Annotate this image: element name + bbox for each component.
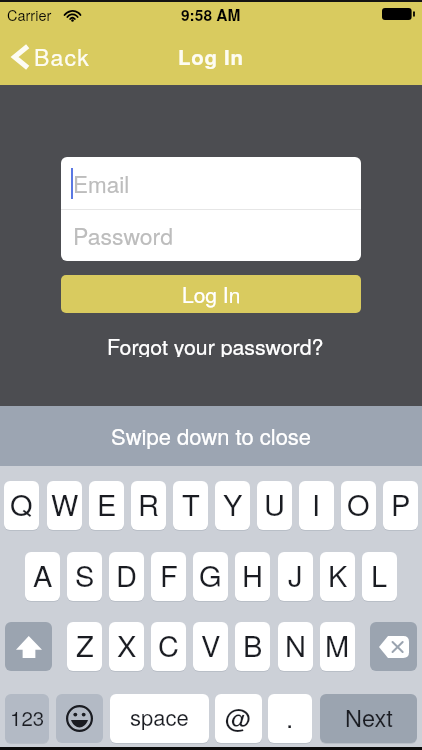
staticText: H	[242, 554, 263, 596]
staticText: Carrier	[7, 4, 52, 25]
button[interactable]: G	[193, 552, 228, 601]
button[interactable]: N	[278, 622, 313, 671]
staticText: Log In	[182, 279, 241, 309]
staticText: space	[130, 701, 189, 733]
button[interactable]: O	[341, 481, 376, 530]
button[interactable]: Swipe down to close	[0, 406, 422, 466]
staticText: P	[391, 483, 411, 525]
button[interactable]: R	[131, 481, 166, 530]
staticText: Z	[76, 624, 94, 666]
button[interactable]: Log In	[61, 275, 361, 313]
staticText: S	[75, 554, 95, 596]
staticText: @	[225, 698, 252, 735]
button[interactable]: V	[193, 622, 228, 671]
staticText: Swipe down to close	[111, 420, 312, 452]
staticText: I	[312, 483, 321, 525]
staticText: U	[264, 483, 285, 525]
staticText: 9:58 AM	[181, 4, 241, 26]
button[interactable]: B	[235, 622, 270, 671]
button[interactable]: U	[257, 481, 292, 530]
button[interactable]: C	[151, 622, 186, 671]
staticText: A	[33, 554, 53, 596]
staticText: M	[325, 624, 350, 666]
button[interactable]: Back	[0, 36, 103, 77]
staticText: G	[199, 554, 222, 596]
staticText: Y	[223, 483, 243, 525]
staticText: L	[371, 554, 388, 596]
button[interactable]: @	[215, 694, 262, 743]
staticText: O	[347, 483, 370, 525]
button[interactable]: Y	[215, 481, 250, 530]
staticText: 123	[10, 702, 45, 731]
button[interactable]: Z	[67, 622, 102, 671]
button[interactable]: E	[89, 481, 124, 530]
staticText: B	[243, 624, 263, 666]
staticText: Password	[73, 219, 174, 252]
staticText: V	[201, 624, 221, 666]
staticText: Q	[10, 483, 33, 525]
staticText: X	[117, 624, 137, 666]
staticText: R	[138, 483, 159, 525]
button[interactable]: X	[109, 622, 144, 671]
button[interactable]: Shift	[5, 622, 52, 671]
button[interactable]: space	[110, 694, 209, 743]
button[interactable]: F	[151, 552, 186, 601]
staticText: K	[328, 554, 348, 596]
button[interactable]: L	[362, 552, 397, 601]
staticText: W	[51, 483, 79, 525]
staticText: Next	[345, 700, 393, 734]
button[interactable]: Emoji	[56, 694, 103, 743]
button[interactable]: H	[235, 552, 270, 601]
staticText: D	[116, 554, 137, 596]
button[interactable]: K	[320, 552, 355, 601]
staticText: Log In	[178, 42, 244, 71]
button[interactable]: I	[299, 481, 334, 530]
staticText: J	[288, 554, 303, 596]
button[interactable]: S	[67, 552, 102, 601]
staticText: .	[286, 698, 294, 735]
button[interactable]: D	[109, 552, 144, 601]
staticText: T	[182, 483, 200, 525]
button[interactable]: Password	[61, 210, 361, 261]
staticText: Back	[34, 40, 91, 73]
button[interactable]: Backspace	[370, 622, 417, 671]
staticText: C	[158, 624, 179, 666]
button[interactable]: Q	[4, 481, 39, 530]
button[interactable]: .	[268, 694, 312, 743]
button[interactable]: A	[25, 552, 60, 601]
button[interactable]: J	[278, 552, 313, 601]
button[interactable]: M	[320, 622, 355, 671]
button[interactable]: T	[173, 481, 208, 530]
button[interactable]: W	[47, 481, 82, 530]
button[interactable]: P	[383, 481, 418, 530]
staticText: F	[160, 554, 178, 596]
button[interactable]: Email	[61, 157, 361, 209]
button[interactable]: Forgot your password?	[0, 331, 422, 357]
staticText: Forgot your password?	[107, 331, 324, 357]
staticText: N	[285, 624, 306, 666]
button[interactable]: 123	[5, 694, 49, 743]
staticText: Email	[73, 167, 130, 199]
button[interactable]: Next	[320, 694, 417, 743]
staticText: E	[97, 483, 117, 525]
